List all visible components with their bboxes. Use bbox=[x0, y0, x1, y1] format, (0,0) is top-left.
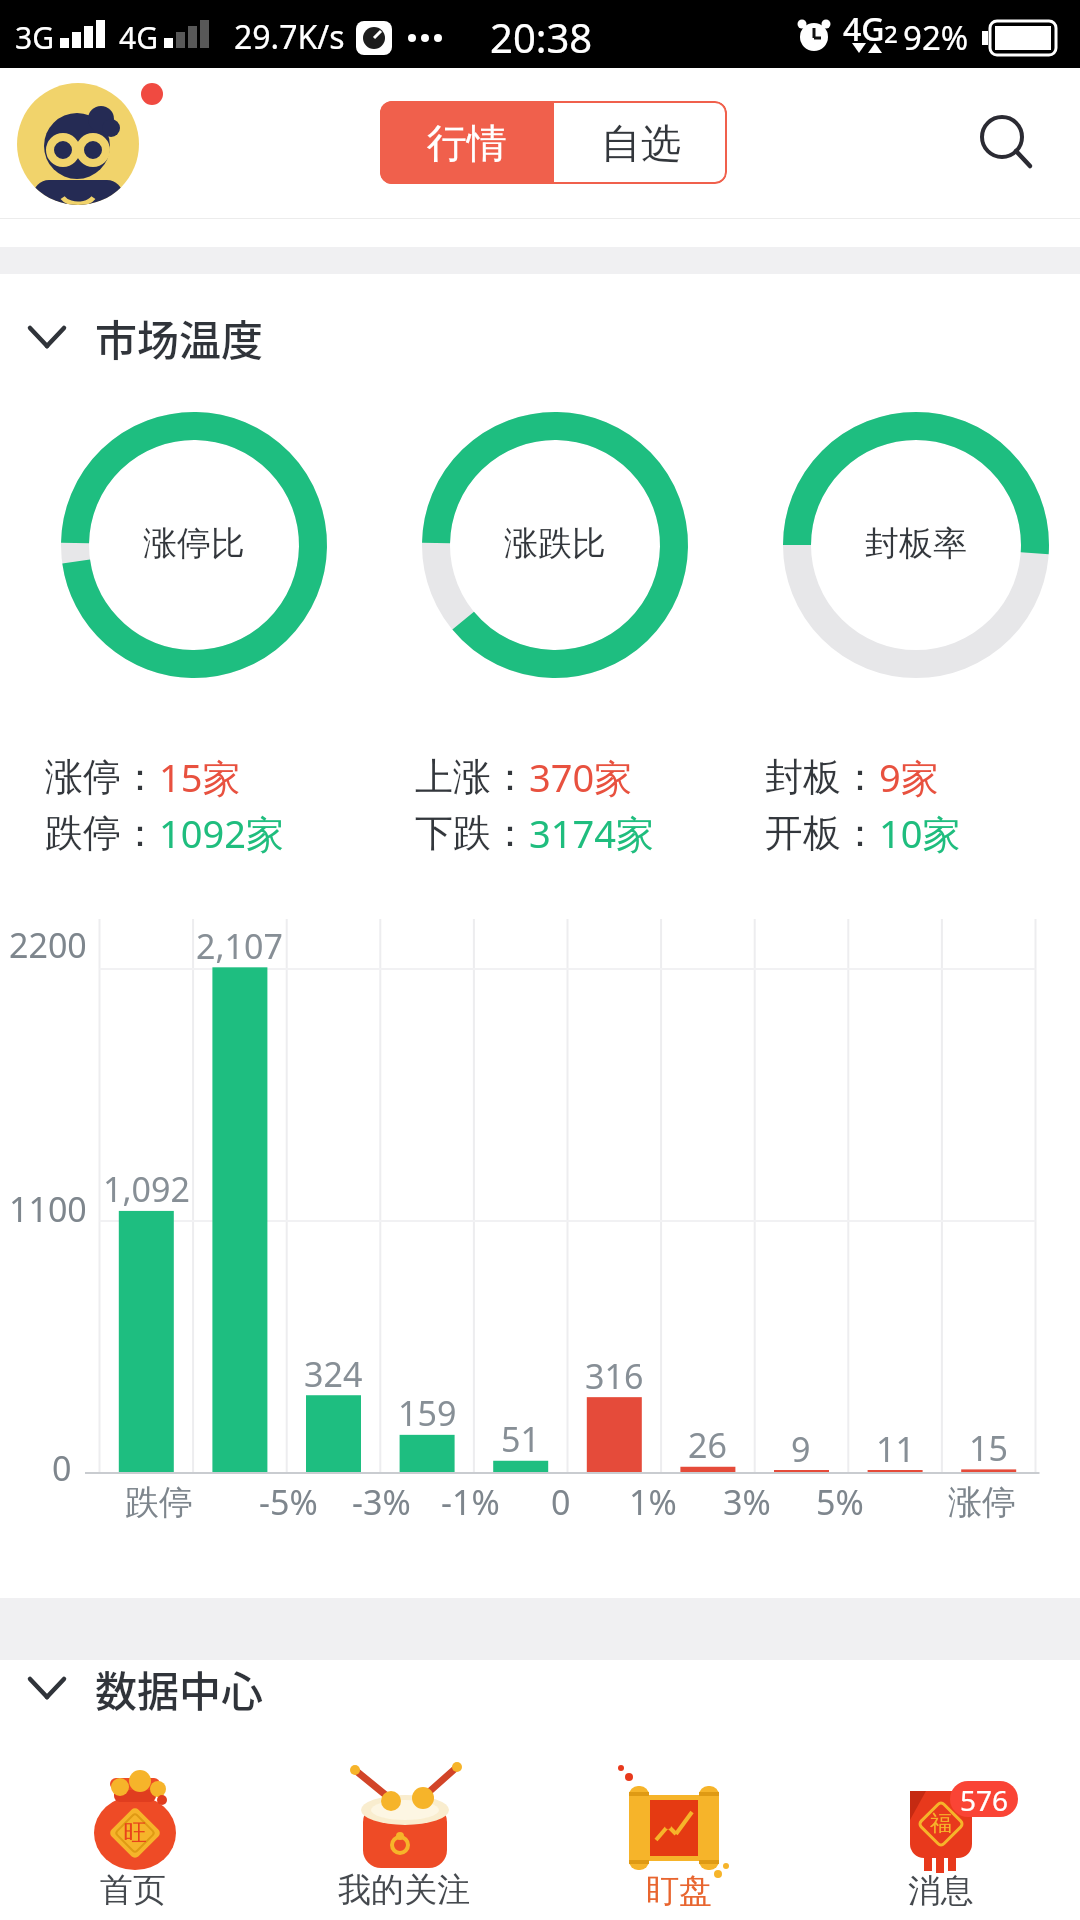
staticText: 旺 bbox=[123, 1818, 147, 1848]
staticText: 3% bbox=[723, 1479, 771, 1525]
staticText: 消息 bbox=[908, 1870, 974, 1912]
staticText: 涨停比 bbox=[143, 522, 245, 565]
button[interactable] bbox=[17, 83, 141, 207]
staticText: 3G bbox=[15, 17, 54, 58]
button[interactable] bbox=[35, 1760, 235, 1915]
staticText: 4G bbox=[843, 7, 885, 51]
staticText: 3174家 bbox=[529, 807, 654, 859]
staticText: 1100 bbox=[9, 1186, 87, 1232]
staticText: 1,092 bbox=[103, 1166, 190, 1212]
button[interactable] bbox=[845, 1760, 1045, 1915]
staticText: 10家 bbox=[879, 807, 961, 859]
staticText: 行情 bbox=[427, 118, 507, 168]
button[interactable] bbox=[575, 1760, 775, 1915]
staticText: 涨停 bbox=[948, 1481, 1016, 1524]
staticText: 15 bbox=[969, 1425, 1008, 1471]
button[interactable]: 自选 bbox=[554, 101, 727, 184]
staticText: 316 bbox=[585, 1353, 644, 1399]
staticText: 1% bbox=[629, 1479, 677, 1525]
staticText: 5% bbox=[816, 1479, 864, 1525]
staticText: 我的关注 bbox=[338, 1869, 470, 1911]
staticText: 上涨： bbox=[415, 753, 529, 801]
staticText: 涨跌比 bbox=[504, 522, 606, 565]
staticText: 51 bbox=[501, 1416, 540, 1462]
staticText: 29.7K/s bbox=[234, 15, 345, 59]
staticText: 4G bbox=[119, 17, 158, 58]
button[interactable]: 行情 bbox=[380, 101, 554, 184]
button[interactable] bbox=[972, 107, 1036, 171]
staticText: 2 bbox=[884, 17, 898, 50]
staticText: 20:38 bbox=[490, 10, 593, 64]
staticText: 福 bbox=[930, 1810, 952, 1838]
staticText: 26 bbox=[688, 1422, 727, 1468]
staticText: 9 bbox=[791, 1426, 811, 1472]
staticText: 跌停 bbox=[125, 1481, 193, 1524]
staticText: 首页 bbox=[100, 1869, 166, 1911]
staticText: 开板： bbox=[765, 809, 879, 857]
staticText: 15家 bbox=[159, 751, 241, 803]
staticText: 封板率 bbox=[865, 522, 967, 565]
button[interactable] bbox=[305, 1760, 505, 1915]
staticText: 1092家 bbox=[159, 807, 284, 859]
staticText: 数据中心 bbox=[95, 1658, 264, 1719]
staticText: -1% bbox=[441, 1479, 500, 1525]
staticText: 盯盘 bbox=[646, 1870, 712, 1912]
staticText: 2,107 bbox=[196, 923, 283, 969]
staticText: 封板： bbox=[765, 753, 879, 801]
staticText: 370家 bbox=[529, 751, 633, 803]
staticText: 159 bbox=[398, 1390, 457, 1436]
staticText: 11 bbox=[876, 1426, 915, 1472]
staticText: 2200 bbox=[9, 922, 87, 968]
staticText: 0 bbox=[52, 1445, 72, 1491]
staticText: 下跌： bbox=[415, 809, 529, 857]
staticText: 自选 bbox=[601, 118, 681, 168]
staticText: 市场温度 bbox=[95, 307, 264, 368]
staticText: 涨停： bbox=[45, 753, 159, 801]
staticText: 0 bbox=[551, 1479, 571, 1525]
staticText: 92% bbox=[903, 15, 969, 60]
staticText: 9家 bbox=[879, 751, 939, 803]
staticText: 跌停： bbox=[45, 809, 159, 857]
staticText: 576 bbox=[960, 1781, 1009, 1817]
staticText: -3% bbox=[352, 1479, 411, 1525]
staticText: 324 bbox=[304, 1351, 363, 1397]
staticText: -5% bbox=[259, 1479, 318, 1525]
